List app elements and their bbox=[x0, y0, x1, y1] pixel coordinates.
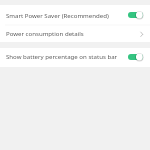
button[interactable]: Toggle setting bbox=[128, 10, 143, 20]
staticText: Smart Power Saver (Recommended) bbox=[6, 11, 128, 19]
button[interactable]: Power consumption details bbox=[0, 24, 150, 42]
button[interactable]: Smart Power Saver (Recommended) bbox=[0, 5, 150, 24]
button[interactable]: Toggle setting bbox=[128, 52, 143, 62]
button[interactable]: Power consumption details bbox=[134, 27, 143, 39]
staticText: Power consumption details bbox=[6, 29, 134, 37]
button[interactable]: Show battery percentage on status bar bbox=[0, 47, 150, 66]
staticText: Show battery percentage on status bar bbox=[6, 52, 128, 60]
